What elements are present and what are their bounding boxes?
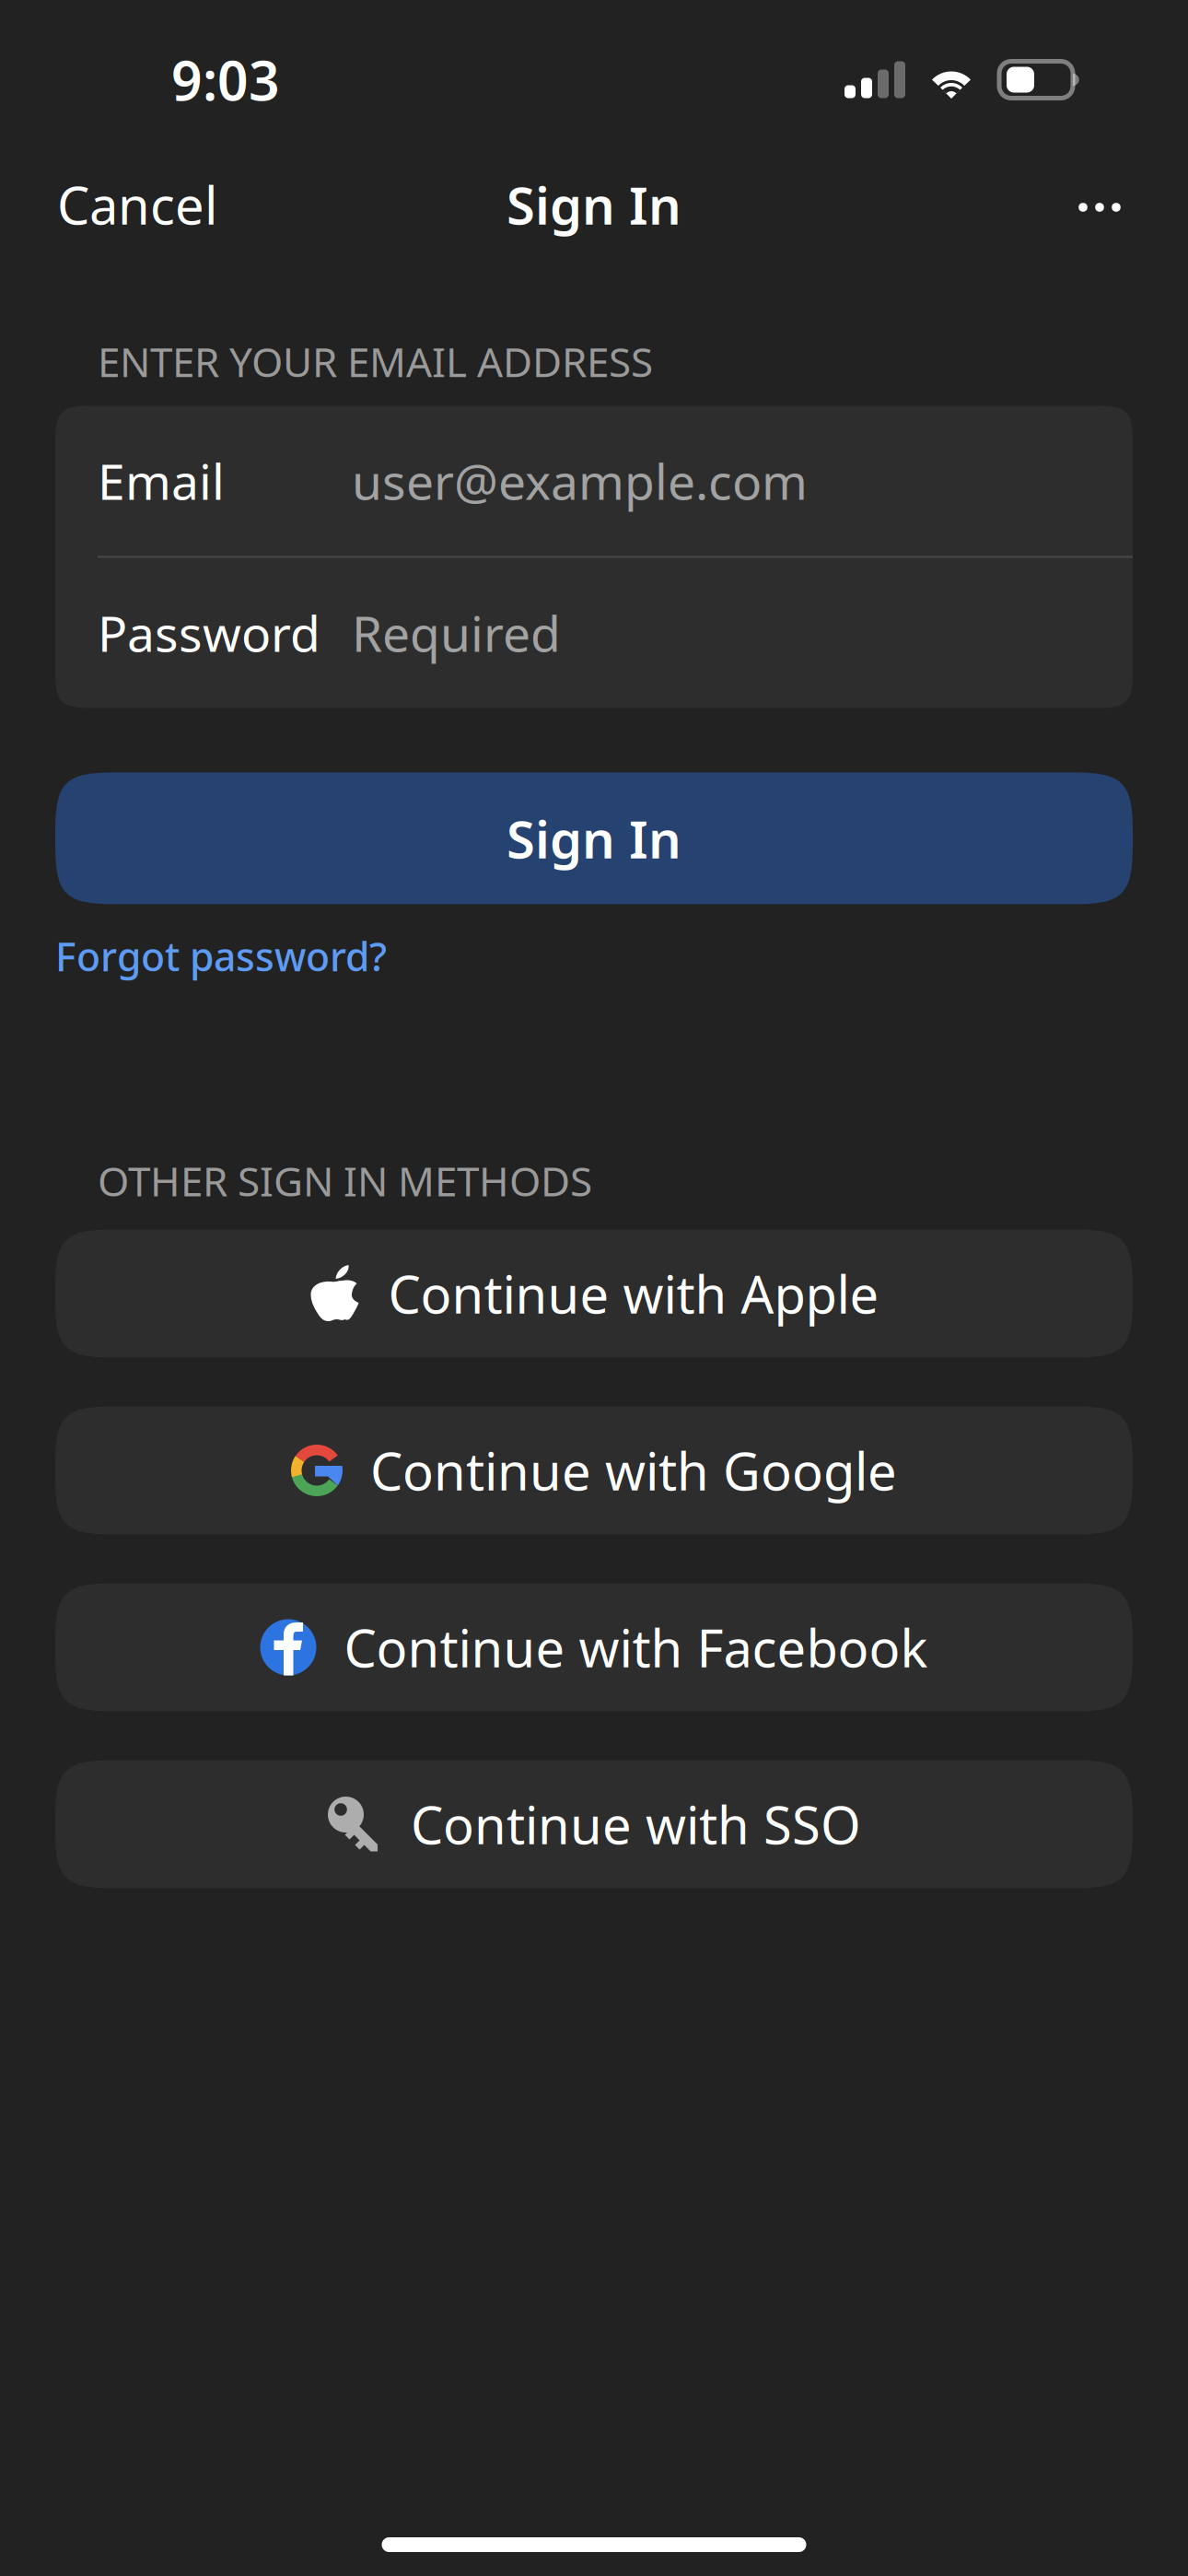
- button[interactable]: Forgot password?: [55, 917, 387, 995]
- staticText: Password: [98, 600, 320, 665]
- staticText: Sign In: [507, 170, 681, 239]
- button[interactable]: Continue with SSO: [55, 1760, 1133, 1888]
- staticText: Sign In: [507, 804, 681, 873]
- button[interactable]: More options: [1027, 159, 1188, 250]
- staticText: Required: [352, 600, 561, 665]
- staticText: Continue with SSO: [411, 1790, 861, 1858]
- button[interactable]: Continue with Facebook: [55, 1583, 1133, 1711]
- button[interactable]: Cancel: [0, 146, 274, 263]
- staticText: Cancel: [57, 170, 217, 239]
- staticText: Email: [98, 448, 225, 513]
- staticText: OTHER SIGN IN METHODS: [98, 1154, 592, 1207]
- button[interactable]: Continue with Google: [55, 1406, 1133, 1534]
- staticText: 9:03: [171, 44, 280, 116]
- button[interactable]: Sign In: [55, 772, 1133, 904]
- button[interactable]: Continue with Apple: [55, 1229, 1133, 1358]
- staticText: Continue with Google: [370, 1436, 897, 1505]
- staticText: Continue with Facebook: [344, 1613, 928, 1682]
- staticText: ENTER YOUR EMAIL ADDRESS: [98, 334, 653, 388]
- staticText: user@example.com: [352, 448, 808, 513]
- staticText: Forgot password?: [55, 930, 387, 982]
- staticText: Continue with Apple: [388, 1259, 879, 1328]
